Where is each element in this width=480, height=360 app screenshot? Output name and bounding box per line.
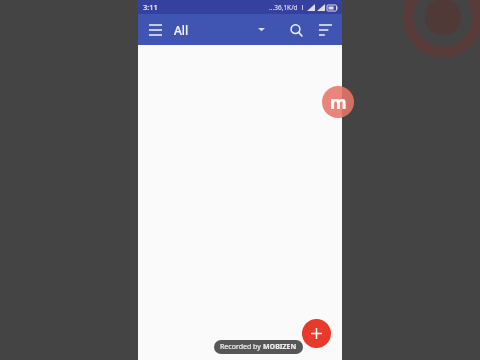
staticText: Recorded by	[220, 342, 263, 352]
staticText: MOBIZEN	[263, 342, 297, 352]
button[interactable]: Open navigation drawer	[142, 17, 168, 43]
button[interactable]: Mobizen recorder	[322, 86, 354, 118]
staticText: m	[330, 91, 347, 114]
button[interactable]: Sort	[311, 16, 339, 44]
button[interactable]: Search	[281, 15, 311, 45]
staticText: 3:11	[143, 2, 158, 12]
staticText: ...36,1K/d	[269, 3, 298, 12]
button[interactable]: All	[174, 14, 281, 45]
staticText: All	[174, 22, 189, 38]
button[interactable]: Add	[302, 319, 331, 348]
